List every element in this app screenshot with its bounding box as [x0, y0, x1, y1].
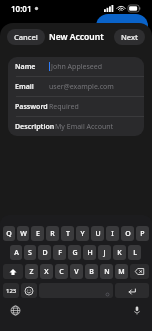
button[interactable]: Email	[8, 77, 144, 96]
staticText: R	[50, 229, 55, 239]
button[interactable]: Cancel	[7, 29, 45, 45]
button[interactable]: I	[106, 226, 119, 241]
button[interactable]: Y	[76, 226, 89, 241]
staticText: V	[74, 267, 79, 277]
button[interactable]: X	[40, 264, 53, 279]
staticText: My Email Account	[55, 122, 114, 132]
staticText: S	[28, 248, 32, 258]
staticText: Next	[121, 32, 138, 42]
staticText: U	[95, 229, 101, 239]
button[interactable]: Change keyboard	[9, 304, 21, 316]
staticText: 10:01	[11, 3, 32, 14]
staticText: Password	[15, 102, 49, 112]
staticText: D	[42, 248, 48, 258]
staticText: F	[58, 248, 62, 258]
staticText: user@example.com	[49, 82, 114, 92]
button[interactable]: S	[24, 245, 36, 260]
staticText: O	[125, 229, 131, 239]
button[interactable]: U	[91, 226, 104, 241]
staticText: G	[72, 248, 78, 258]
staticText: Q	[6, 229, 12, 239]
staticText: New Account	[49, 31, 104, 43]
button[interactable]: B	[85, 264, 98, 279]
button[interactable]: Name	[8, 57, 144, 76]
button[interactable]: T	[61, 226, 74, 241]
button[interactable]: F	[53, 245, 66, 260]
button[interactable]: H	[83, 245, 96, 260]
staticText: H	[87, 248, 93, 258]
button[interactable]: D	[38, 245, 51, 260]
button[interactable]: P	[136, 226, 149, 241]
staticText: P	[140, 229, 145, 239]
staticText: K	[117, 248, 122, 258]
button[interactable]: J	[98, 245, 111, 260]
staticText: Name	[15, 62, 49, 72]
button[interactable]: K	[113, 245, 126, 260]
staticText: Y	[80, 229, 85, 239]
staticText: Cancel	[14, 32, 38, 42]
button[interactable]: E	[31, 226, 44, 241]
staticText: T	[66, 229, 70, 239]
staticText: B	[89, 267, 94, 277]
button[interactable]: Shift	[3, 264, 23, 279]
button[interactable]: O	[121, 226, 134, 241]
button[interactable]: W	[17, 226, 29, 241]
button[interactable]: R	[46, 226, 59, 241]
button[interactable]: Password	[8, 97, 144, 116]
staticText: Required	[49, 102, 79, 112]
button[interactable]: N	[100, 264, 113, 279]
staticText: E	[36, 229, 40, 239]
button[interactable]: Next	[114, 29, 145, 45]
button[interactable]: Description	[8, 117, 144, 136]
button[interactable]: Q	[3, 226, 15, 241]
button[interactable]: M	[115, 264, 128, 279]
button[interactable]: C	[55, 264, 68, 279]
staticText: 123	[6, 287, 17, 295]
button[interactable]: G	[68, 245, 81, 260]
staticText: N	[104, 267, 110, 277]
staticText: X	[44, 267, 49, 277]
staticText: L	[133, 248, 137, 258]
staticText: M	[118, 267, 125, 277]
staticText: Email	[15, 82, 49, 92]
staticText: John Appleseed	[51, 62, 103, 72]
button[interactable]: Return	[115, 283, 149, 298]
button[interactable]: Voice input	[131, 304, 143, 316]
button[interactable]: 123	[3, 283, 19, 298]
button[interactable]: A	[10, 245, 22, 260]
staticText: I	[111, 229, 114, 239]
staticText: A	[14, 248, 19, 258]
staticText: Description	[15, 122, 55, 132]
staticText: J	[103, 248, 106, 258]
button[interactable]: Emoji	[21, 283, 37, 298]
button[interactable]: Z	[25, 264, 38, 279]
staticText: Z	[29, 267, 34, 277]
button[interactable]: L	[128, 245, 141, 260]
button[interactable]: Backspace	[130, 264, 149, 279]
staticText: W	[20, 229, 27, 239]
button[interactable]: V	[70, 264, 83, 279]
staticText: C	[59, 267, 64, 277]
